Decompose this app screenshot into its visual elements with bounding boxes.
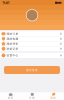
button[interactable]: 分类 xyxy=(21,92,43,100)
button[interactable]: 我的评价 xyxy=(0,41,64,46)
staticText: 9:41 xyxy=(2,0,9,5)
button[interactable]: 我的订单 xyxy=(0,31,64,36)
button[interactable]: 浏览记录 xyxy=(0,46,64,51)
staticText: 设置中心 xyxy=(6,54,18,57)
staticText: 首页 xyxy=(8,96,14,99)
button[interactable]: 我的 xyxy=(43,92,64,100)
button[interactable]: 设置中心 xyxy=(0,53,64,58)
staticText: 退出登录 xyxy=(26,68,38,72)
button[interactable]: 退出登录 xyxy=(4,66,60,74)
button[interactable]: 首页 xyxy=(0,92,21,100)
staticText: 我的评价 xyxy=(6,42,18,45)
staticText: 我的 xyxy=(50,96,56,99)
staticText: 浏览记录 xyxy=(6,47,18,50)
staticText: 分类 xyxy=(29,96,35,99)
staticText: 我的订单 xyxy=(6,32,18,35)
staticText: 我的收藏 xyxy=(6,37,18,40)
button[interactable]: 我的收藏 xyxy=(0,36,64,41)
